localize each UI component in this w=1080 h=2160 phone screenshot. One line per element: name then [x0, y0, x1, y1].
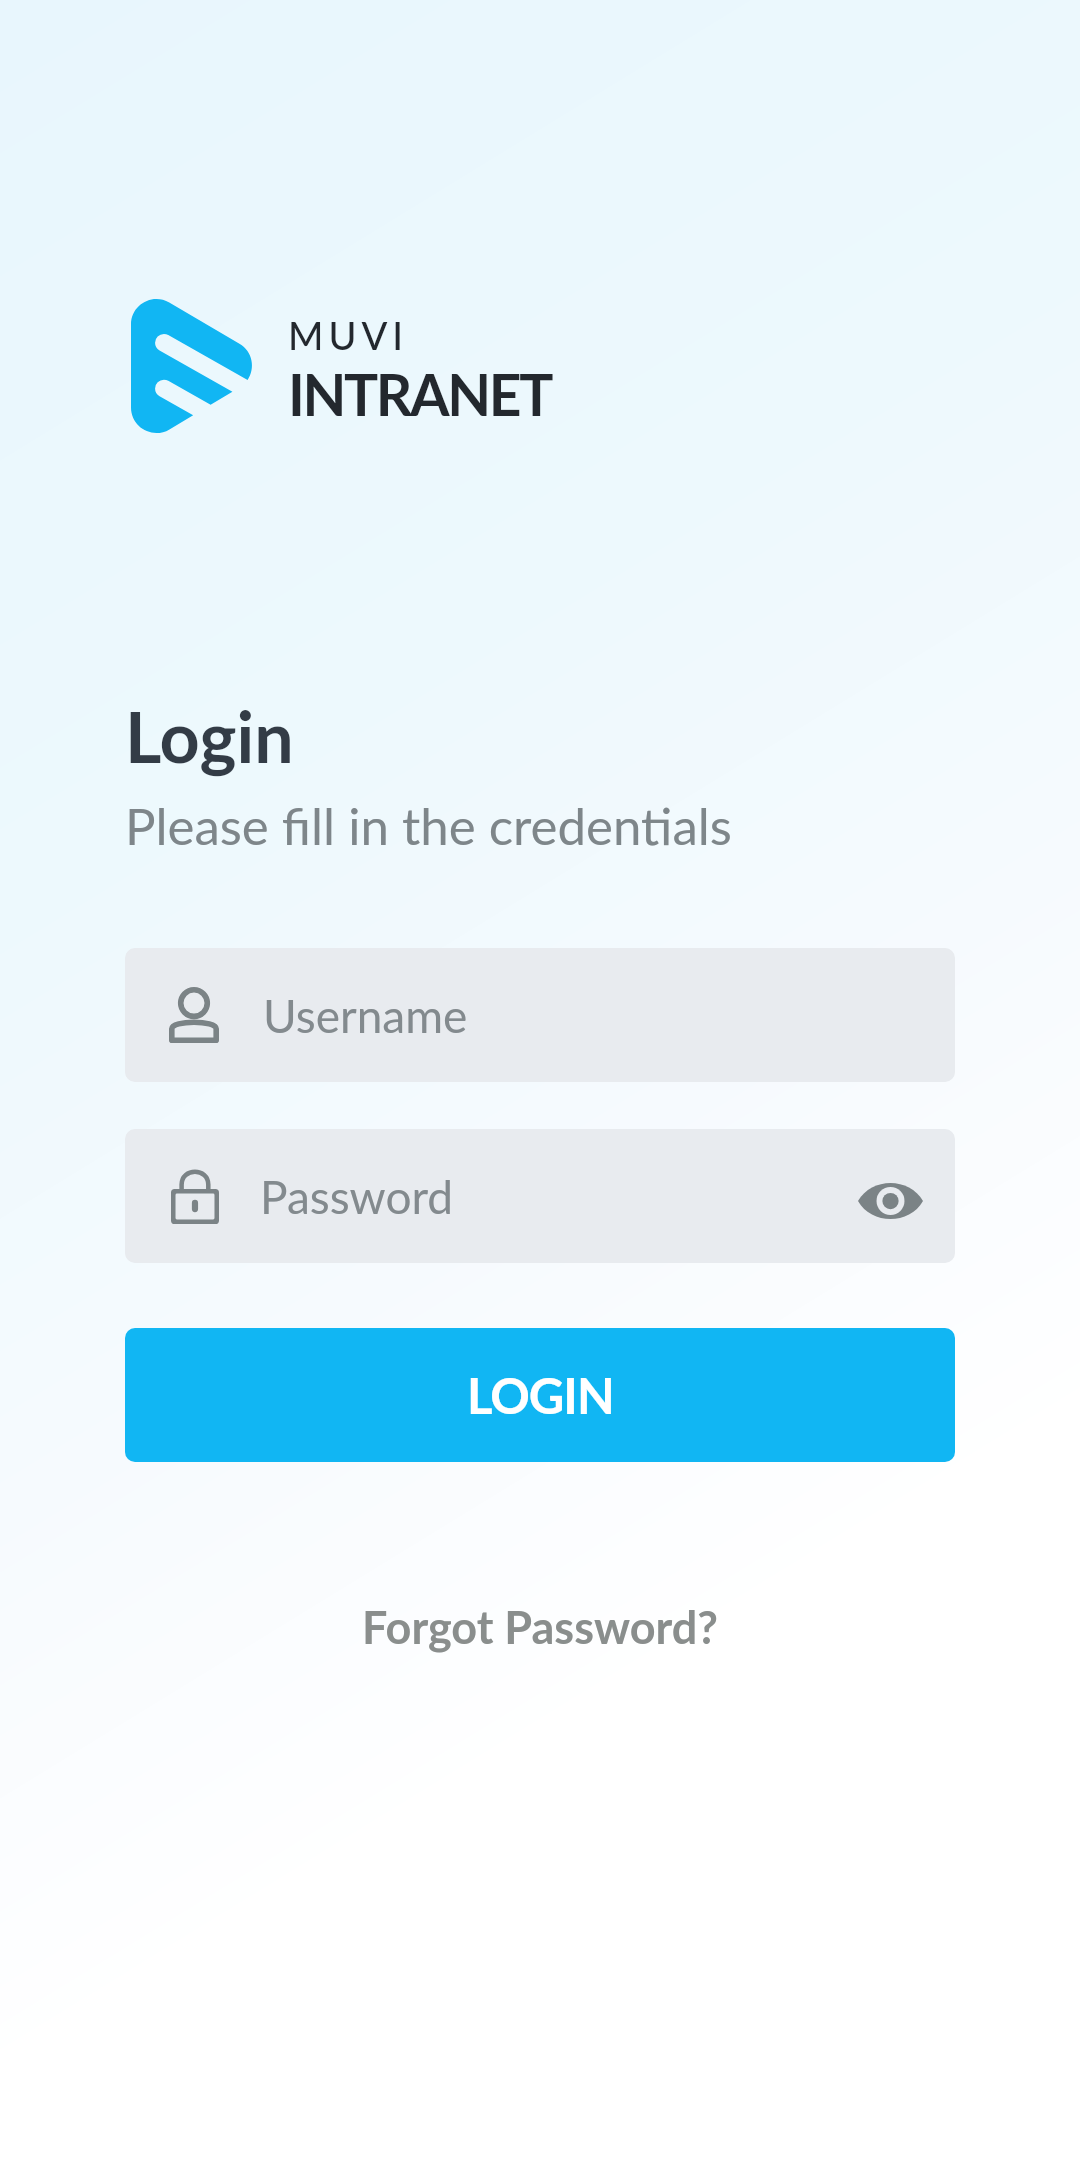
staticText: Username [263, 988, 468, 1043]
button[interactable]: Username [125, 948, 955, 1082]
staticText: Password [260, 1169, 454, 1224]
button[interactable]: LOGIN [125, 1328, 955, 1462]
staticText: Please fill in the credentials [125, 795, 732, 856]
staticText: MUVI [288, 312, 409, 358]
button[interactable]: Forgot Password? [342, 1588, 738, 1666]
button[interactable]: Password [125, 1129, 955, 1263]
staticText: INTRANET [288, 360, 551, 428]
staticText: Login [125, 694, 294, 778]
staticText: LOGIN [467, 1366, 614, 1425]
staticText: Forgot Password? [362, 1600, 718, 1654]
button[interactable]: Show password [850, 1161, 930, 1241]
